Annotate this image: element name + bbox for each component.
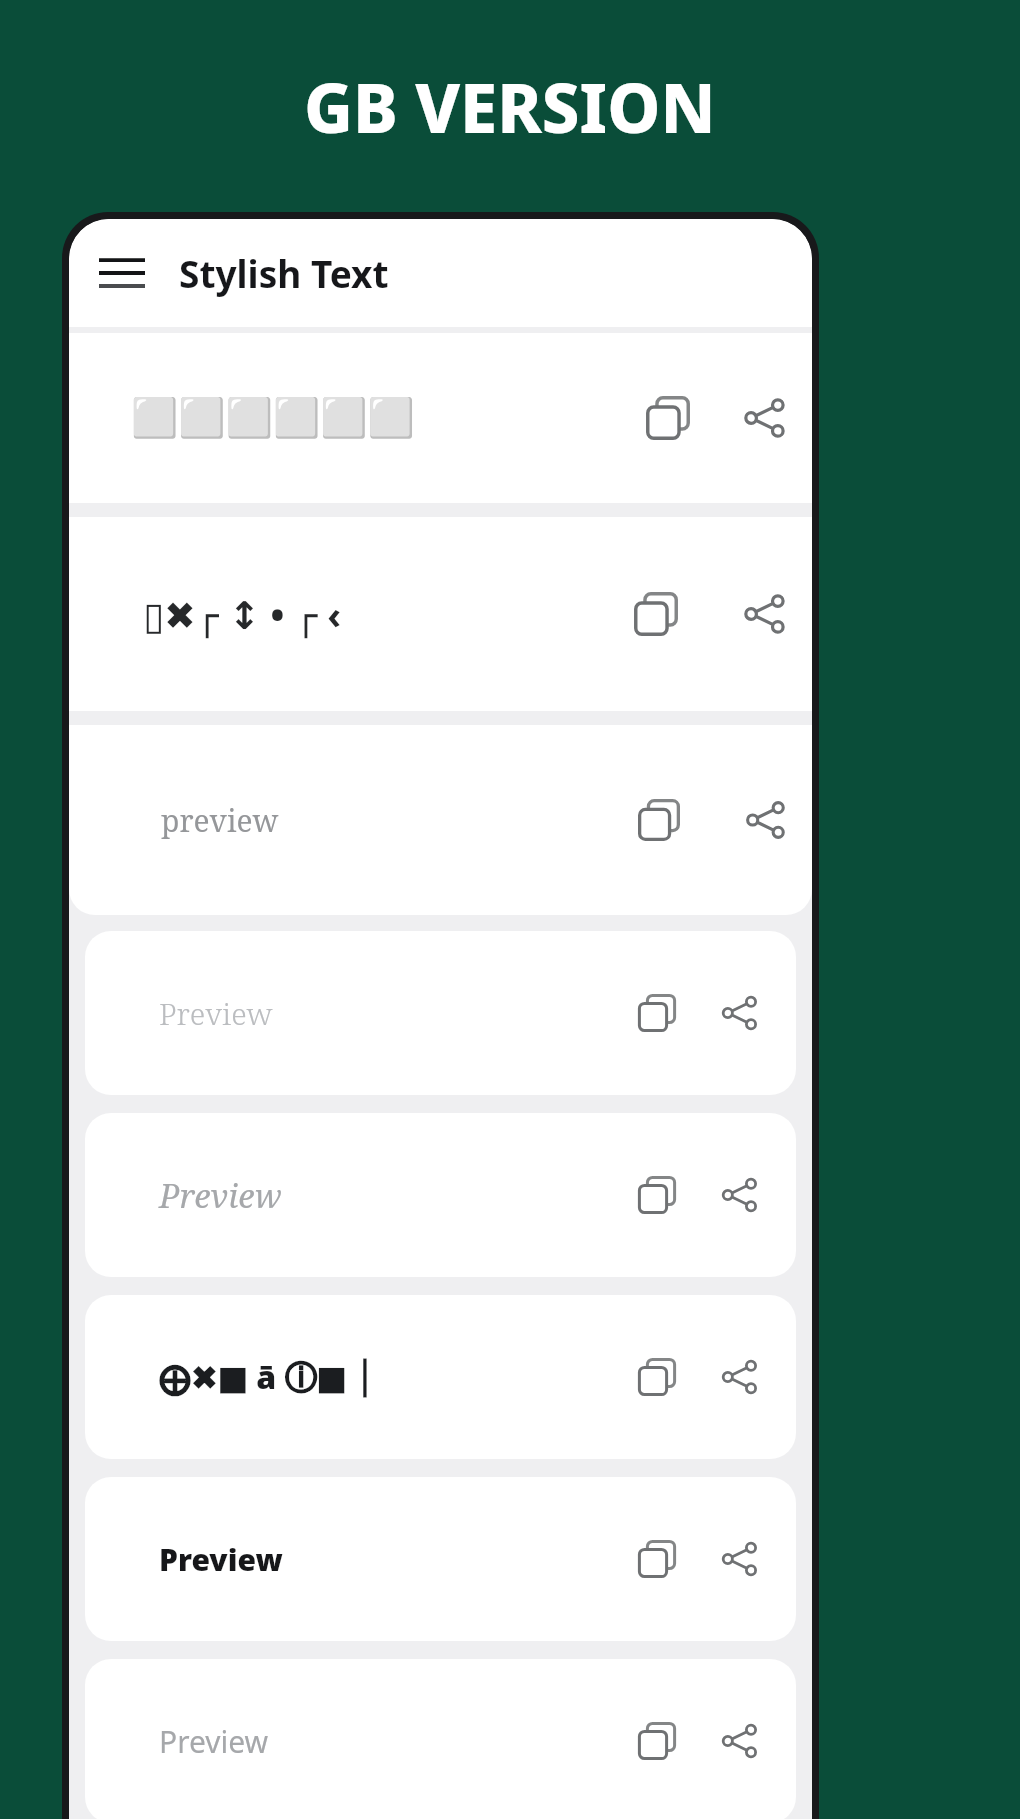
button[interactable]: ▯✖┌ ↕ • ┌ ‹ <box>69 517 812 711</box>
button[interactable]: Copy <box>626 1710 688 1772</box>
button[interactable]: Copy <box>626 1346 688 1408</box>
button[interactable]: Share <box>732 787 798 853</box>
staticText: Preview <box>159 1173 282 1218</box>
button[interactable]: Copy <box>626 1528 688 1590</box>
button[interactable]: Share <box>708 1164 770 1226</box>
button[interactable]: Copy <box>626 1164 688 1226</box>
button[interactable]: Share <box>708 1710 770 1772</box>
button[interactable]: Share <box>708 1528 770 1590</box>
staticText: preview <box>161 800 279 841</box>
staticText: ⨁✖■ ā ⓘ■ │ <box>159 1355 375 1399</box>
staticText: Preview <box>159 1539 283 1580</box>
staticText: ▯✖┌ ↕ • ┌ ‹ <box>143 588 342 640</box>
button[interactable]: Copy <box>634 384 702 452</box>
button[interactable]: ⨁✖■ ā ⓘ■ │ <box>85 1295 796 1459</box>
button[interactable]: Share <box>708 982 770 1044</box>
staticText: Preview <box>159 993 273 1034</box>
button[interactable]: Share <box>730 384 798 452</box>
button[interactable]: Open navigation menu <box>93 244 151 302</box>
staticText: Preview <box>159 1721 269 1762</box>
button[interactable]: ⬜⬜⬜⬜⬜⬜ <box>69 333 812 503</box>
button[interactable]: Share <box>708 1346 770 1408</box>
button[interactable]: preview <box>69 725 812 915</box>
button[interactable]: Copy <box>626 787 692 853</box>
button[interactable]: Preview <box>85 1113 796 1277</box>
button[interactable]: Share <box>730 580 798 648</box>
button[interactable]: Copy <box>626 982 688 1044</box>
button[interactable]: Preview <box>85 1659 796 1819</box>
button[interactable]: Preview <box>85 931 796 1095</box>
button[interactable]: Preview <box>85 1477 796 1641</box>
staticText: GB VERSION <box>304 61 716 152</box>
staticText: ⬜⬜⬜⬜⬜⬜ <box>131 396 415 441</box>
staticText: Stylish Text <box>179 248 389 298</box>
button[interactable]: Copy <box>622 580 690 648</box>
